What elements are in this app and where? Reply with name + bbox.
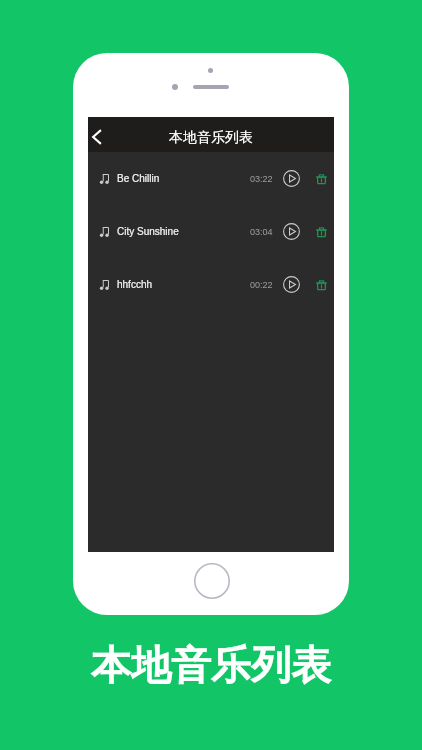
button[interactable]: Play xyxy=(281,168,301,188)
staticText: 03:22 xyxy=(250,174,273,184)
staticText: City Sunshine xyxy=(117,226,179,237)
button[interactable]: Play xyxy=(281,221,301,241)
button[interactable]: City Sunshine xyxy=(88,205,334,258)
button[interactable]: Delete xyxy=(311,221,331,241)
button[interactable]: Delete xyxy=(311,274,331,294)
staticText: 本地音乐列表 xyxy=(169,129,253,147)
button[interactable]: hhfcchh xyxy=(88,258,334,311)
staticText: 00:22 xyxy=(250,280,273,290)
button[interactable]: Be Chillin xyxy=(88,152,334,205)
staticText: hhfcchh xyxy=(117,279,153,290)
staticText: 03:04 xyxy=(250,227,273,237)
staticText: 本地音乐列表 xyxy=(0,640,422,690)
staticText: Be Chillin xyxy=(117,173,160,184)
button[interactable]: Delete xyxy=(311,168,331,188)
button[interactable]: Play xyxy=(281,274,301,294)
button[interactable]: Back xyxy=(88,123,106,151)
